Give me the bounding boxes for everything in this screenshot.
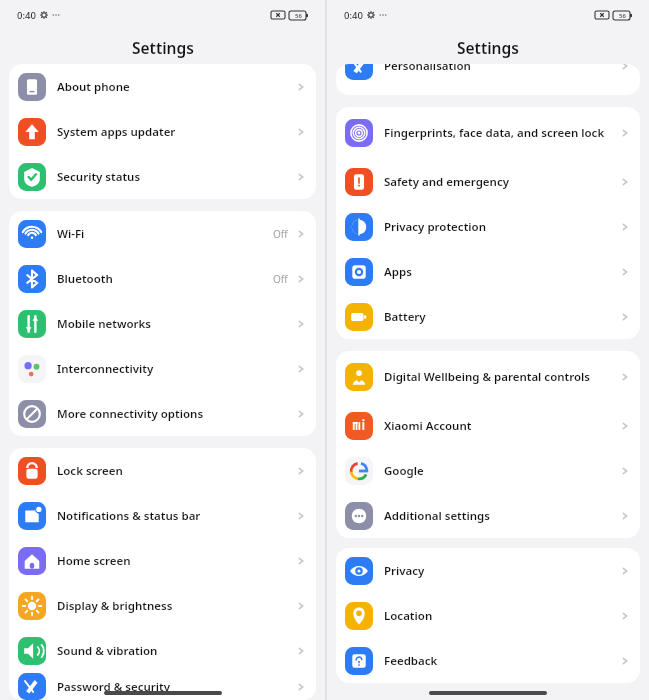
staticText: Battery xyxy=(384,309,619,325)
button[interactable]: Password & security xyxy=(9,673,316,700)
button[interactable]: Apps xyxy=(336,249,640,294)
button[interactable]: Sound & vibration xyxy=(9,628,316,673)
staticText: Bluetooth xyxy=(57,271,273,287)
staticText: Settings xyxy=(457,37,519,58)
button[interactable]: Digital Wellbeing & parental controls xyxy=(336,351,640,403)
staticText: Privacy xyxy=(384,563,619,579)
button[interactable]: Lock screen xyxy=(9,448,316,493)
button[interactable]: Feedback xyxy=(336,638,640,683)
staticText: 0:40 xyxy=(344,9,363,22)
staticText: Lock screen xyxy=(57,463,295,479)
button[interactable]: Google xyxy=(336,448,640,493)
staticText: Xiaomi Account xyxy=(384,418,619,434)
staticText: 0:40 xyxy=(17,9,36,22)
staticText: Off xyxy=(273,227,288,241)
staticText: About phone xyxy=(57,79,295,95)
button[interactable]: Safety and emergency xyxy=(336,159,640,204)
staticText: Off xyxy=(273,272,288,286)
staticText: Password & security xyxy=(57,679,295,695)
staticText: Safety and emergency xyxy=(384,174,619,190)
staticText: Mobile networks xyxy=(57,316,295,332)
staticText: System apps updater xyxy=(57,124,295,140)
staticText: Security status xyxy=(57,169,295,185)
button[interactable]: Bluetooth xyxy=(9,256,316,301)
staticText: Location xyxy=(384,608,619,624)
button[interactable]: More connectivity options xyxy=(9,391,316,436)
staticText: Additional settings xyxy=(384,508,619,524)
staticText: 56 xyxy=(295,12,302,20)
staticText: More connectivity options xyxy=(57,406,295,422)
button[interactable]: Additional settings xyxy=(336,493,640,538)
button[interactable]: Security status xyxy=(9,154,316,199)
staticText: Privacy protection xyxy=(384,219,619,235)
button[interactable]: About phone xyxy=(9,64,316,109)
staticText: Sound & vibration xyxy=(57,643,295,659)
button[interactable]: Home screen xyxy=(9,538,316,583)
staticText: 56 xyxy=(619,12,626,20)
staticText: Fingerprints, face data, and screen lock xyxy=(384,125,619,141)
staticText: Personalisation xyxy=(384,64,619,74)
button[interactable]: Location xyxy=(336,593,640,638)
button[interactable]: System apps updater xyxy=(9,109,316,154)
staticText: Digital Wellbeing & parental controls xyxy=(384,369,619,385)
staticText: Feedback xyxy=(384,653,619,669)
staticText: Interconnectivity xyxy=(57,361,295,377)
staticText: Apps xyxy=(384,264,619,280)
button[interactable]: Privacy protection xyxy=(336,204,640,249)
button[interactable]: Display & brightness xyxy=(9,583,316,628)
staticText: Home screen xyxy=(57,553,295,569)
button[interactable]: Wi-Fi xyxy=(9,211,316,256)
staticText: Settings xyxy=(132,37,194,58)
button[interactable]: Interconnectivity xyxy=(9,346,316,391)
staticText: Google xyxy=(384,463,619,479)
button[interactable]: Battery xyxy=(336,294,640,339)
button[interactable]: Notifications & status bar xyxy=(9,493,316,538)
button[interactable]: Xiaomi Account xyxy=(336,403,640,448)
staticText: Wi-Fi xyxy=(57,226,273,242)
staticText: Notifications & status bar xyxy=(57,508,295,524)
button[interactable]: Personalisation xyxy=(336,64,640,81)
button[interactable]: Privacy xyxy=(336,548,640,593)
staticText: Display & brightness xyxy=(57,598,295,614)
button[interactable]: Mobile networks xyxy=(9,301,316,346)
button[interactable]: Fingerprints, face data, and screen lock xyxy=(336,107,640,159)
